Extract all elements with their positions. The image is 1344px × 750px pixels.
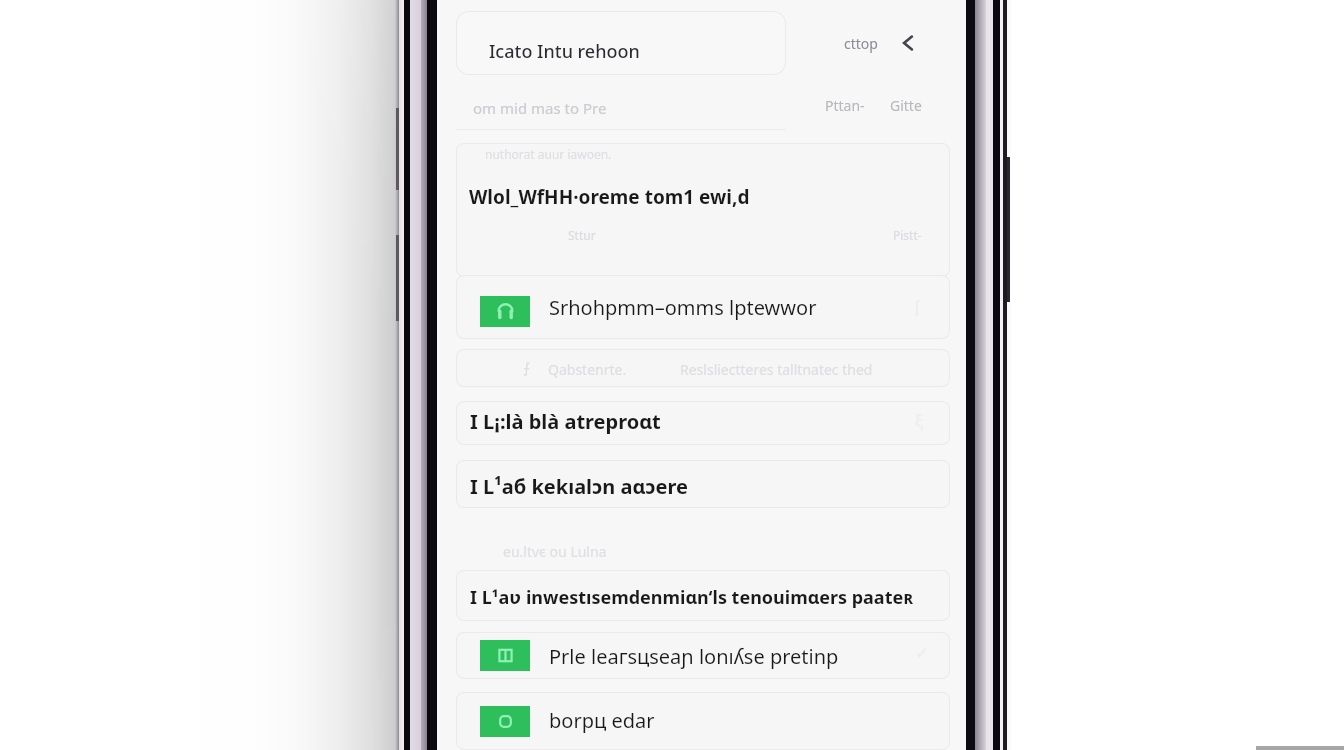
button[interactable] [456,143,950,277]
staticText: eu.ltvє ou Lulnа [503,542,607,561]
staticText: Gitte [890,96,922,115]
button[interactable] [456,460,950,508]
button[interactable]: Pttan- [825,96,865,115]
button[interactable] [456,692,950,750]
staticText: Reslsliectteres talltnatec thed [680,360,873,379]
staticText: nuthorat auur iawoen. [485,146,612,162]
staticText: I L¹aб kekıalɔn aɑɔere [470,473,688,500]
staticText: ξ [915,409,924,432]
button[interactable] [456,401,950,445]
button[interactable] [456,275,950,339]
staticText: I L¹aʋ inwestısemdenmiɑn‘ls tenouimɑers … [470,585,914,610]
button[interactable]: cttop [844,30,878,56]
button[interactable] [456,570,950,621]
staticText: Icato Intu rehoon [489,39,640,64]
button[interactable] [456,632,950,679]
button[interactable] [456,349,950,387]
staticText: Qabstenrte. [548,360,627,379]
staticText: ʃ [915,294,920,317]
staticText: Prle leaгsцseaɲ lonıʎse pretinp [549,643,839,670]
staticText: I L¡:là blà atreproɑt [470,408,661,435]
staticText: borpц edar [549,707,655,734]
staticText: Pttan- [825,96,865,115]
button[interactable] [456,86,786,130]
staticText: Srhohpmm–omms lptewwor [549,294,817,321]
staticText: Pistt- [893,227,922,243]
staticText: ⨍ [523,360,531,376]
staticText: om mid mas to Pre [473,98,607,118]
staticText: cttop [844,34,878,53]
staticText: Sttur [568,227,596,243]
staticText: Wlol_WfHH·oreme tom1 ewi,d [469,184,750,210]
button[interactable]: Gitte [890,96,922,115]
button[interactable] [456,11,786,75]
button[interactable]: Back [894,29,922,57]
